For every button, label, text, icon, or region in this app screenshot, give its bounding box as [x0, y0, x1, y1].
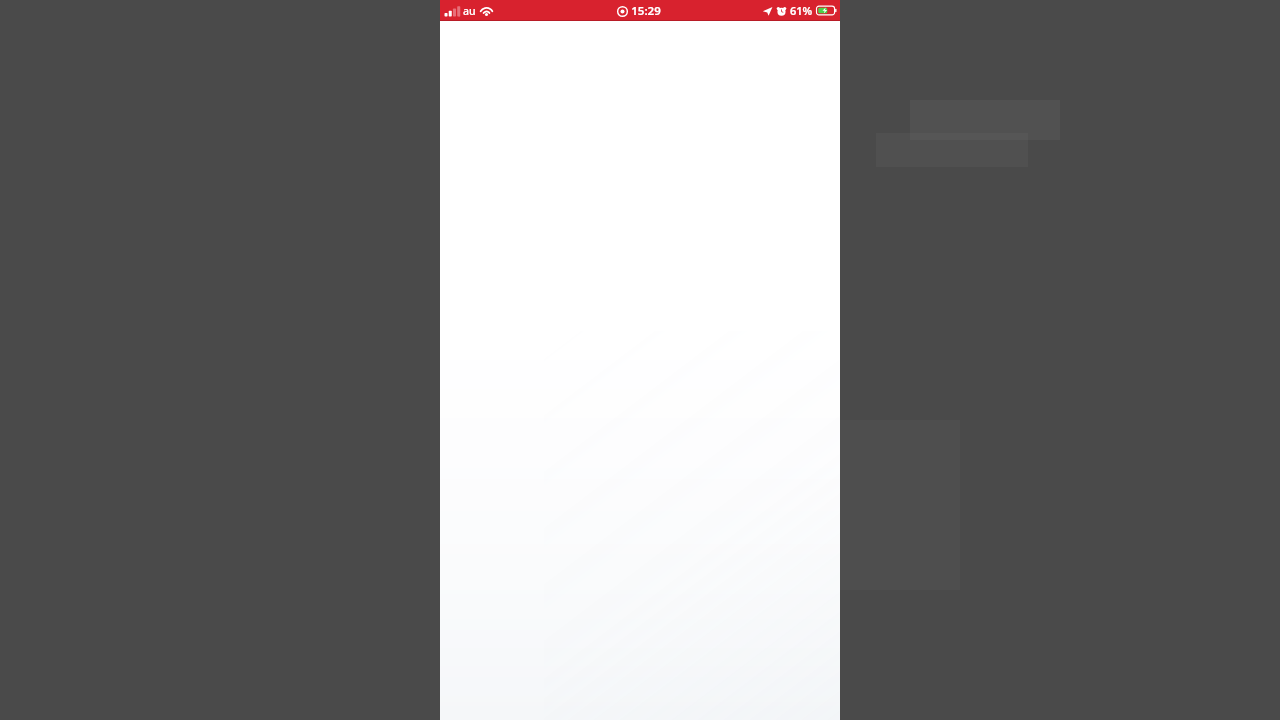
staticText: au — [463, 4, 476, 18]
button[interactable]: Location on, alarm set, battery 61 perce… — [762, 3, 837, 18]
staticText: 15:29 — [631, 3, 661, 19]
button[interactable]: Network status: au, signal, Wi-Fi — [444, 4, 494, 18]
button[interactable]: Screen recording, time 15:29 — [617, 3, 661, 19]
staticText: 61% — [790, 3, 813, 18]
